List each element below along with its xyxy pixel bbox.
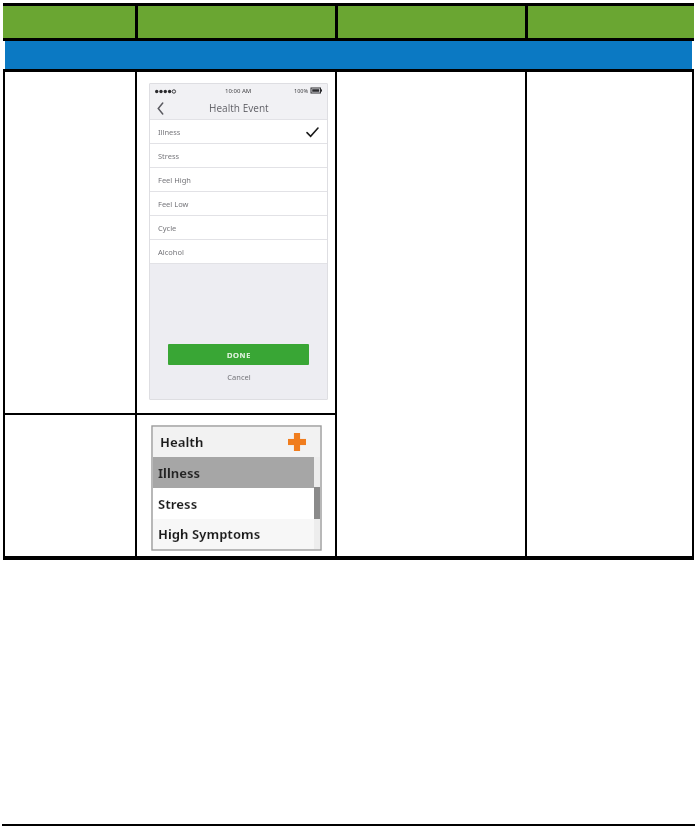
staticText: DONE bbox=[227, 350, 251, 360]
staticText: Feel High bbox=[158, 175, 191, 185]
staticText: Stress bbox=[158, 151, 180, 161]
button[interactable]: DONE bbox=[168, 344, 309, 365]
button[interactable]: Add health event bbox=[288, 433, 306, 451]
button[interactable]: Stress bbox=[153, 488, 320, 519]
button[interactable]: Cycle bbox=[150, 216, 327, 240]
staticText: 10:00 AM bbox=[225, 87, 252, 95]
staticText: Health bbox=[160, 433, 204, 451]
staticText: Health Event bbox=[209, 101, 269, 115]
button[interactable]: Feel High bbox=[150, 168, 327, 192]
staticText: Alcohol bbox=[158, 247, 184, 257]
button[interactable]: Alcohol bbox=[150, 240, 327, 264]
staticText: Feel Low bbox=[158, 199, 189, 209]
button[interactable]: Illness bbox=[153, 457, 320, 488]
button[interactable]: Illness bbox=[150, 120, 327, 144]
button[interactable]: High Symptoms bbox=[153, 519, 320, 549]
staticText: Illness bbox=[158, 127, 181, 137]
staticText: Stress bbox=[158, 495, 198, 513]
button[interactable]: Back bbox=[150, 98, 170, 118]
button[interactable]: Feel Low bbox=[150, 192, 327, 216]
staticText: Cancel bbox=[227, 372, 251, 382]
staticText: Illness bbox=[158, 464, 201, 482]
staticText: 100% bbox=[294, 87, 309, 94]
button[interactable]: Health bbox=[153, 427, 320, 457]
staticText: Cycle bbox=[158, 223, 177, 233]
button[interactable]: Stress bbox=[150, 144, 327, 168]
staticText: High Symptoms bbox=[158, 525, 261, 543]
button[interactable]: Cancel bbox=[217, 370, 261, 384]
